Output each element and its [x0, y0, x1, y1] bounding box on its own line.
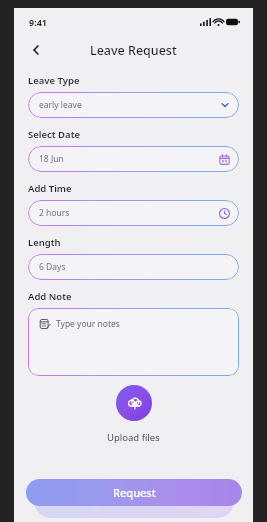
- staticText: Upload files: [107, 431, 160, 444]
- button[interactable]: 2 hours: [28, 200, 239, 226]
- button[interactable]: 6 Days: [28, 254, 239, 280]
- staticText: 18 Jun: [39, 153, 219, 165]
- button[interactable]: Type your notes: [28, 308, 239, 376]
- button[interactable]: Request: [26, 479, 242, 506]
- staticText: Add Time: [28, 182, 72, 195]
- staticText: 9:41: [29, 16, 47, 28]
- staticText: Leave Type: [28, 74, 80, 87]
- staticText: Add Note: [28, 290, 72, 303]
- staticText: Type your notes: [56, 318, 120, 330]
- staticText: early leave: [39, 99, 220, 111]
- staticText: 6 Days: [39, 261, 230, 273]
- staticText: Select Date: [28, 128, 81, 141]
- staticText: Request: [113, 485, 156, 500]
- button[interactable]: 18 Jun: [28, 146, 239, 172]
- staticText: Length: [28, 236, 61, 249]
- staticText: 2 hours: [39, 207, 219, 219]
- button[interactable]: Upload files: [116, 385, 152, 421]
- staticText: Leave Request: [90, 42, 177, 59]
- button[interactable]: early leave: [28, 92, 239, 118]
- button[interactable]: Back: [24, 38, 48, 62]
